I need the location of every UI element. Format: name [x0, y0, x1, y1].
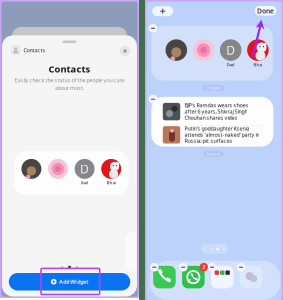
staticText: BJP's Ramdas wears shoes	[184, 102, 248, 109]
button[interactable]: App	[240, 266, 262, 288]
staticText: Contacts	[48, 63, 90, 75]
staticText: Dad	[227, 62, 235, 67]
button[interactable]: Remove widget	[208, 263, 216, 271]
staticText: Russia; pic surfaces	[184, 137, 232, 144]
staticText: Contacts	[23, 47, 45, 54]
button[interactable]: Folder	[211, 266, 233, 288]
staticText: D	[80, 161, 89, 177]
staticText: 2	[202, 264, 205, 271]
staticText: D	[226, 42, 235, 58]
staticText: Putin's goddaughter Ksenia	[184, 125, 249, 132]
button[interactable]: Remove widget	[149, 24, 157, 33]
staticText: about most.	[55, 84, 84, 91]
button[interactable]: Remove widget	[149, 95, 157, 103]
button[interactable]: WhatsApp	[182, 266, 205, 288]
button[interactable]: Close	[119, 45, 130, 56]
button[interactable]: Done	[255, 6, 276, 16]
staticText: Contacts	[206, 85, 221, 90]
button[interactable]: Remove widget	[179, 263, 187, 271]
staticText: Done	[257, 6, 274, 15]
staticText: after 6 years, Shivraj Singh	[184, 108, 247, 115]
staticText: Dad	[81, 180, 89, 185]
button[interactable]: Add Widget	[9, 273, 130, 290]
staticText: Bhai	[253, 62, 262, 67]
staticText: Bhai	[107, 180, 116, 185]
staticText: Add Widget	[59, 278, 88, 285]
button[interactable]: Add widget	[152, 6, 173, 16]
staticText: attends 'almost-naked' party in	[184, 131, 259, 138]
button[interactable]: Phone	[153, 266, 176, 288]
staticText: Chouhan shares video	[184, 114, 237, 121]
button[interactable]: Remove widget	[150, 263, 159, 271]
staticText: Easily check the status of the people yo…	[14, 77, 124, 84]
button[interactable]: Remove widget	[237, 263, 245, 271]
staticText: Inshorts	[206, 151, 220, 157]
